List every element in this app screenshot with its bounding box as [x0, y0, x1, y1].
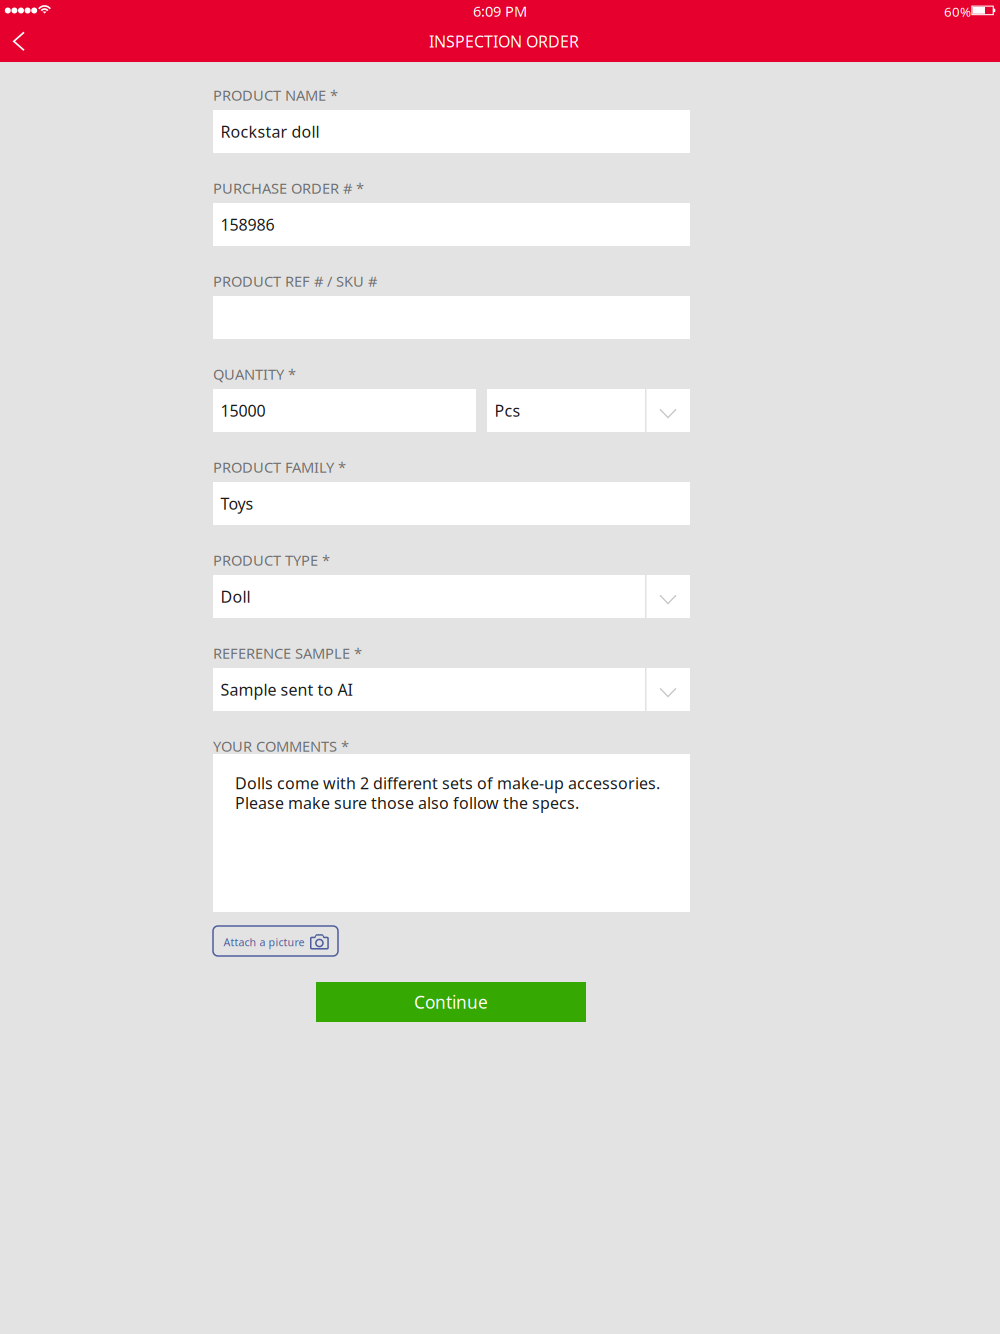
staticText: INSPECTION ORDER — [429, 31, 579, 52]
staticText: PRODUCT NAME * — [213, 85, 338, 105]
staticText: PRODUCT FAMILY * — [213, 457, 346, 477]
staticText: Continue — [414, 990, 488, 1013]
button[interactable]: Back — [0, 22, 38, 60]
button[interactable]: Doll — [213, 575, 690, 618]
staticText: Sample sent to AI — [220, 679, 352, 700]
button[interactable]: Continue — [316, 982, 586, 1022]
staticText: PRODUCT REF # / SKU # — [213, 271, 377, 291]
staticText: YOUR COMMENTS * — [213, 736, 349, 756]
staticText: QUANTITY * — [213, 364, 296, 384]
staticText: PRODUCT TYPE * — [213, 550, 330, 570]
button[interactable]: Attach a picture — [213, 926, 338, 956]
button[interactable]: Sample sent to AI — [213, 668, 690, 711]
staticText: Doll — [220, 586, 250, 607]
staticText: Dolls come with 2 different sets of make… — [235, 772, 660, 793]
staticText: 158986 — [220, 214, 274, 235]
staticText: Attach a picture — [223, 935, 304, 949]
staticText: PURCHASE ORDER # * — [213, 178, 364, 198]
staticText: Toys — [220, 493, 253, 514]
staticText: 15000 — [220, 400, 265, 421]
staticText: REFERENCE SAMPLE * — [213, 643, 362, 663]
staticText: 6:09 PM — [473, 1, 527, 21]
button[interactable]: Pcs — [487, 389, 690, 432]
staticText: Rockstar doll — [220, 121, 319, 142]
staticText: 60% — [944, 3, 971, 20]
staticText: Please make sure those also follow the s… — [235, 792, 579, 813]
staticText: Pcs — [494, 400, 520, 421]
